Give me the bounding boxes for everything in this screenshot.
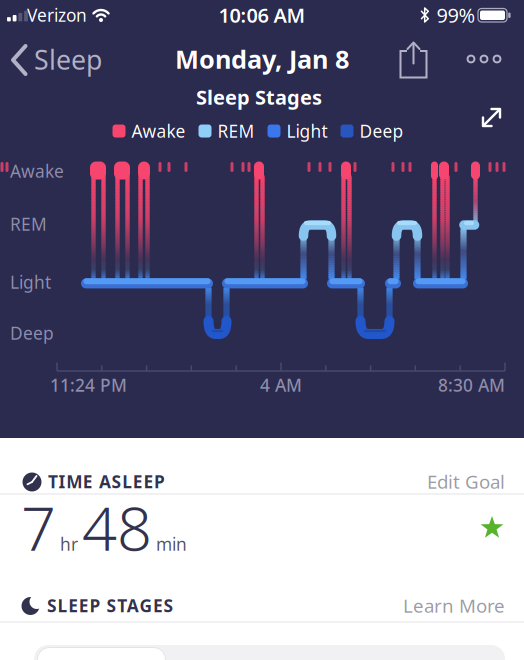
staticText: 99% <box>436 2 475 28</box>
staticText: Awake <box>131 119 185 142</box>
staticText: 8:30 AM <box>438 373 505 396</box>
staticText: Deep <box>359 119 403 142</box>
staticText: TIME ASLEEP <box>48 470 165 493</box>
staticText: SLEEP STAGES <box>47 594 174 617</box>
button[interactable]: Learn More <box>385 592 505 618</box>
button[interactable]: More options <box>460 40 508 78</box>
staticText: Learn More <box>403 593 505 618</box>
staticText: Awake <box>10 159 64 182</box>
staticText: Monday, Jan 8 <box>175 42 349 76</box>
button[interactable]: Sleep <box>0 38 104 82</box>
staticText: hr <box>60 533 78 556</box>
staticText: Light <box>10 270 51 293</box>
staticText: Edit Goal <box>427 469 505 494</box>
staticText: min <box>156 533 187 556</box>
staticText: Verizon <box>27 3 87 26</box>
button[interactable]: Share <box>396 38 432 82</box>
staticText: 48 <box>82 486 152 568</box>
button[interactable]: Expand chart <box>475 100 509 134</box>
staticText: 4 AM <box>260 373 302 396</box>
button[interactable]: Sleep stages tab <box>37 647 166 660</box>
button[interactable]: Edit Goal <box>385 468 505 494</box>
staticText: 11:24 PM <box>50 373 127 396</box>
staticText: Deep <box>10 321 54 344</box>
staticText: Light <box>286 119 327 142</box>
staticText: 10:06 AM <box>218 2 305 28</box>
staticText: 7 <box>21 486 56 568</box>
staticText: Sleep <box>34 42 102 77</box>
staticText: REM <box>217 119 254 142</box>
staticText: Sleep Stages <box>196 84 322 110</box>
staticText: REM <box>10 212 47 235</box>
